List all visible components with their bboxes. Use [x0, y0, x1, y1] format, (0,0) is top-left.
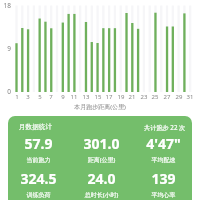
- staticText: 29: [173, 93, 185, 101]
- staticText: 当前跑力: [8, 156, 69, 164]
- staticText: 本月跑步距离(公里): [0, 103, 200, 200]
- staticText: 13: [80, 93, 92, 101]
- staticText: 25: [149, 93, 161, 101]
- staticText: 17: [103, 93, 115, 101]
- staticText: 31: [184, 93, 196, 101]
- staticText: 1: [11, 93, 23, 101]
- staticText: 月数据统计: [19, 123, 52, 131]
- staticText: 3: [22, 93, 34, 101]
- staticText: 9: [57, 93, 69, 101]
- staticText: 总时长(小时): [71, 191, 132, 199]
- button[interactable]: 月数据统计: [8, 116, 192, 200]
- staticText: 训练负荷: [8, 191, 69, 199]
- staticText: 11: [68, 93, 80, 101]
- staticText: 139: [133, 169, 192, 188]
- staticText: 27: [161, 93, 173, 101]
- staticText: 24.0: [71, 169, 132, 188]
- staticText: 平均配速: [133, 156, 192, 164]
- staticText: 23: [138, 93, 150, 101]
- staticText: 平均心率: [133, 191, 192, 199]
- staticText: 301.0: [71, 134, 132, 153]
- staticText: 18: [0, 1, 11, 10]
- staticText: 7: [45, 93, 57, 101]
- staticText: 21: [126, 93, 138, 101]
- staticText: 0: [0, 87, 11, 96]
- staticText: 19: [115, 93, 127, 101]
- staticText: 距离(公里): [71, 156, 132, 164]
- staticText: 共计跑步 22 次: [144, 123, 186, 131]
- staticText: 324.5: [8, 169, 69, 188]
- staticText: 4'47": [133, 134, 192, 153]
- staticText: 57.9: [8, 134, 69, 153]
- staticText: 5: [34, 93, 46, 101]
- staticText: 15: [92, 93, 104, 101]
- staticText: 9: [0, 44, 11, 53]
